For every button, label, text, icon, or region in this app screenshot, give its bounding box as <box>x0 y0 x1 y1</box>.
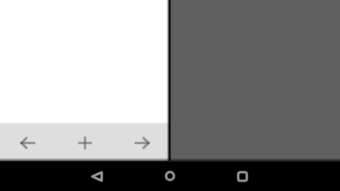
button[interactable]: Close navigation drawer <box>0 0 340 191</box>
button[interactable]: Back <box>0 124 56 161</box>
button[interactable]: Home <box>154 161 186 191</box>
button[interactable]: Recents <box>226 161 258 191</box>
button[interactable]: Forward <box>113 124 170 161</box>
button[interactable]: Add <box>56 124 113 161</box>
button[interactable]: Back <box>81 161 113 191</box>
